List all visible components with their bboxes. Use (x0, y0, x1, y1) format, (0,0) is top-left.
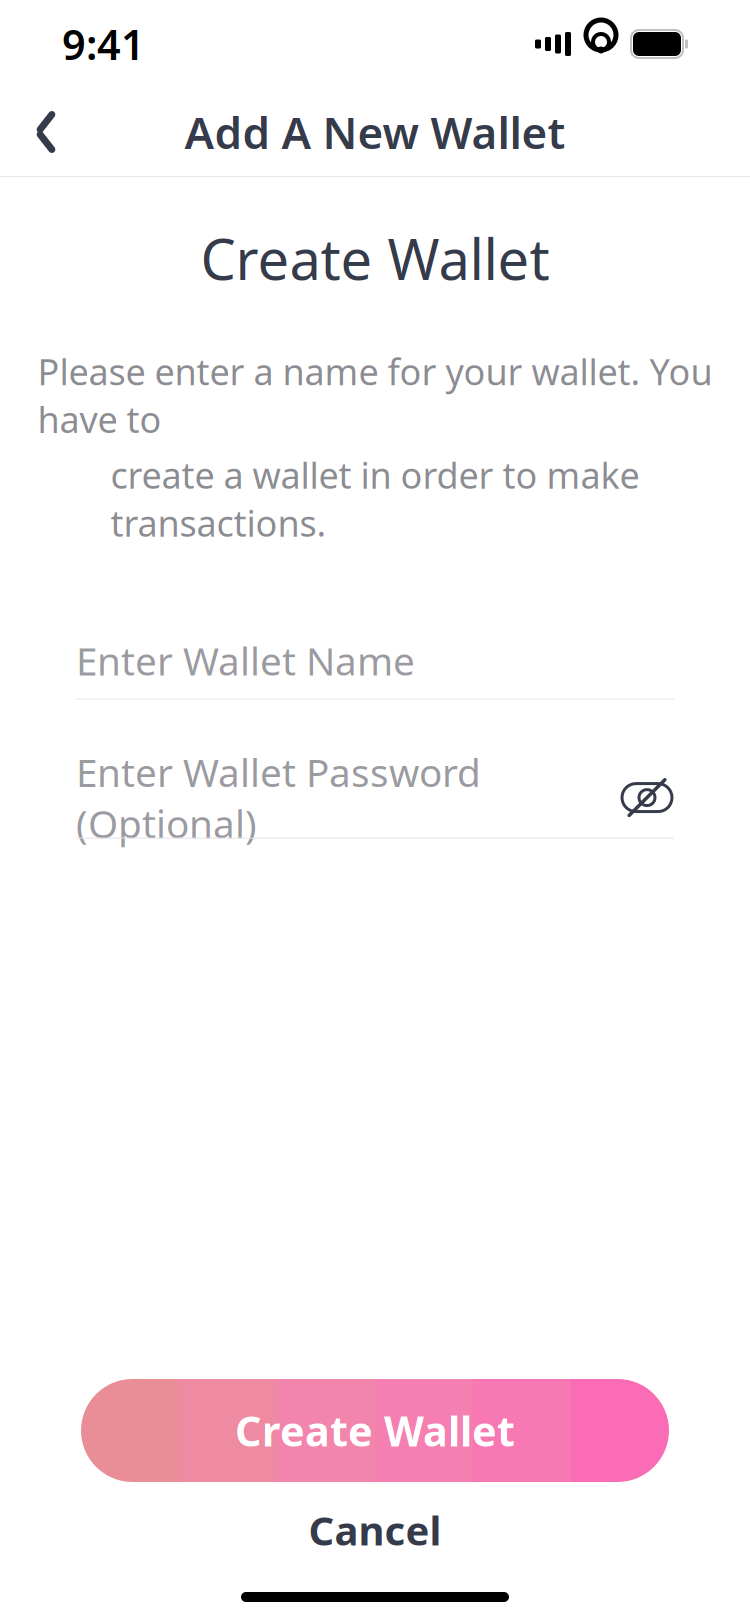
button[interactable]: Create Wallet (81, 1379, 669, 1482)
staticText: Add A New Wallet (184, 103, 565, 161)
staticText: Cancel (308, 1503, 441, 1556)
staticText: Please enter a name for your wallet. You… (37, 347, 712, 443)
staticText: Enter Wallet Name (76, 635, 415, 686)
staticText: create a wallet in order to make transac… (110, 451, 639, 547)
button[interactable]: Show password (620, 776, 674, 820)
staticText: 9:41 (62, 17, 145, 71)
button[interactable]: Back (10, 96, 82, 168)
staticText: Enter Wallet Password (Optional) (76, 746, 481, 849)
staticText: Create Wallet (200, 221, 549, 295)
staticText: Create Wallet (235, 1403, 515, 1458)
button[interactable]: Cancel (245, 1498, 505, 1562)
